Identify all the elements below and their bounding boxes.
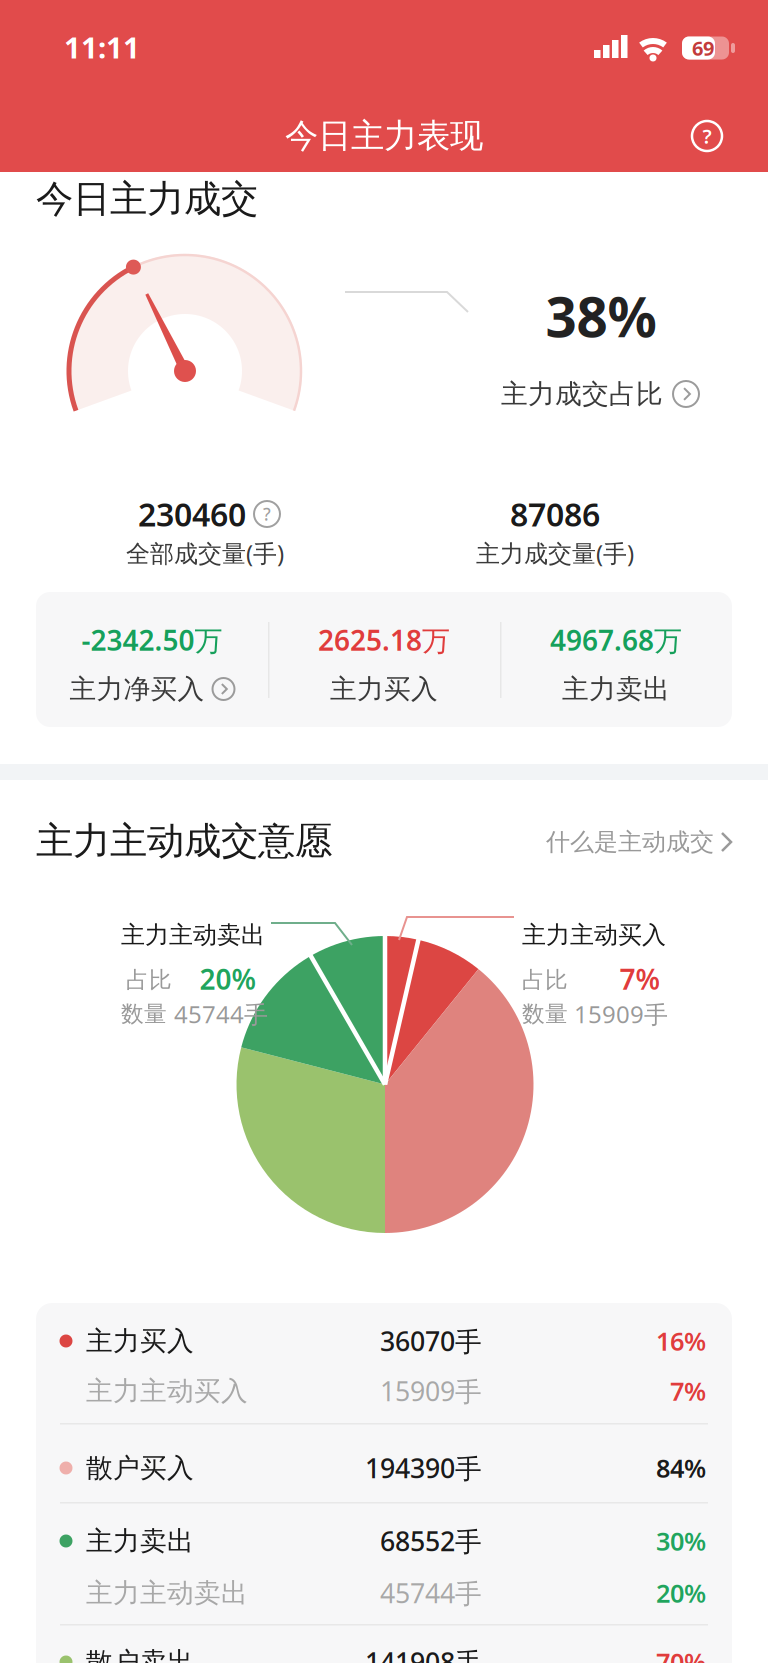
staticText: 230460: [138, 493, 246, 535]
staticText: 主力买入: [86, 1325, 194, 1357]
staticText: 占比: [522, 966, 568, 994]
staticText: 4967.68万: [550, 621, 682, 659]
staticText: 主力主动成交意愿: [36, 818, 332, 864]
staticText: 占比: [126, 966, 172, 994]
staticText: 全部成交量(手): [126, 537, 284, 569]
staticText: 30%: [656, 1524, 706, 1558]
staticText: 今日主力表现: [285, 115, 483, 156]
button[interactable]: 全部成交量说明: [138, 493, 280, 535]
staticText: 11:11: [64, 27, 140, 66]
staticText: 15909手: [380, 1373, 482, 1409]
staticText: 主力卖出: [86, 1525, 194, 1557]
staticText: 数量: [522, 1000, 568, 1028]
staticText: 主力净买入: [69, 673, 204, 705]
staticText: 69: [692, 35, 714, 61]
staticText: 84%: [656, 1451, 706, 1485]
staticText: 194390手: [365, 1450, 482, 1486]
staticText: 70%: [656, 1645, 706, 1663]
staticText: 15909手: [574, 998, 668, 1030]
staticText: 主力成交量(手): [476, 537, 634, 569]
staticText: 主力卖出: [562, 673, 670, 705]
staticText: 主力主动卖出: [121, 920, 265, 950]
button[interactable]: 什么是主动成交: [546, 827, 734, 857]
staticText: 主力主动卖出: [86, 1577, 248, 1609]
staticText: 主力主动买入: [522, 920, 666, 950]
staticText: 36070手: [380, 1323, 482, 1359]
staticText: 散户买入: [86, 1452, 194, 1484]
staticText: 7%: [619, 960, 660, 998]
staticText: 87086: [510, 493, 600, 535]
staticText: 什么是主动成交: [546, 827, 714, 857]
staticText: 数量: [121, 1000, 167, 1028]
staticText: 68552手: [380, 1523, 482, 1559]
staticText: 散户卖出: [86, 1646, 194, 1663]
button[interactable]: Help: [690, 119, 724, 153]
staticText: 主力成交占比: [501, 378, 663, 410]
staticText: 7%: [670, 1374, 706, 1408]
staticText: 今日主力成交: [36, 176, 258, 222]
staticText: 主力主动买入: [86, 1375, 248, 1407]
staticText: 2625.18万: [318, 621, 450, 659]
staticText: 45744手: [174, 998, 268, 1030]
staticText: 45744手: [380, 1575, 482, 1611]
staticText: 20%: [199, 960, 256, 998]
staticText: 主力买入: [330, 673, 438, 705]
staticText: 20%: [656, 1576, 706, 1610]
staticText: ?: [702, 123, 711, 149]
staticText: -2342.50万: [81, 621, 222, 659]
staticText: 141908手: [365, 1644, 482, 1663]
staticText: ?: [263, 502, 271, 525]
button[interactable]: 主力成交占比: [501, 378, 699, 410]
staticText: 38%: [545, 280, 656, 352]
staticText: 16%: [656, 1324, 706, 1358]
button[interactable]: 主力净买入: [69, 673, 234, 705]
